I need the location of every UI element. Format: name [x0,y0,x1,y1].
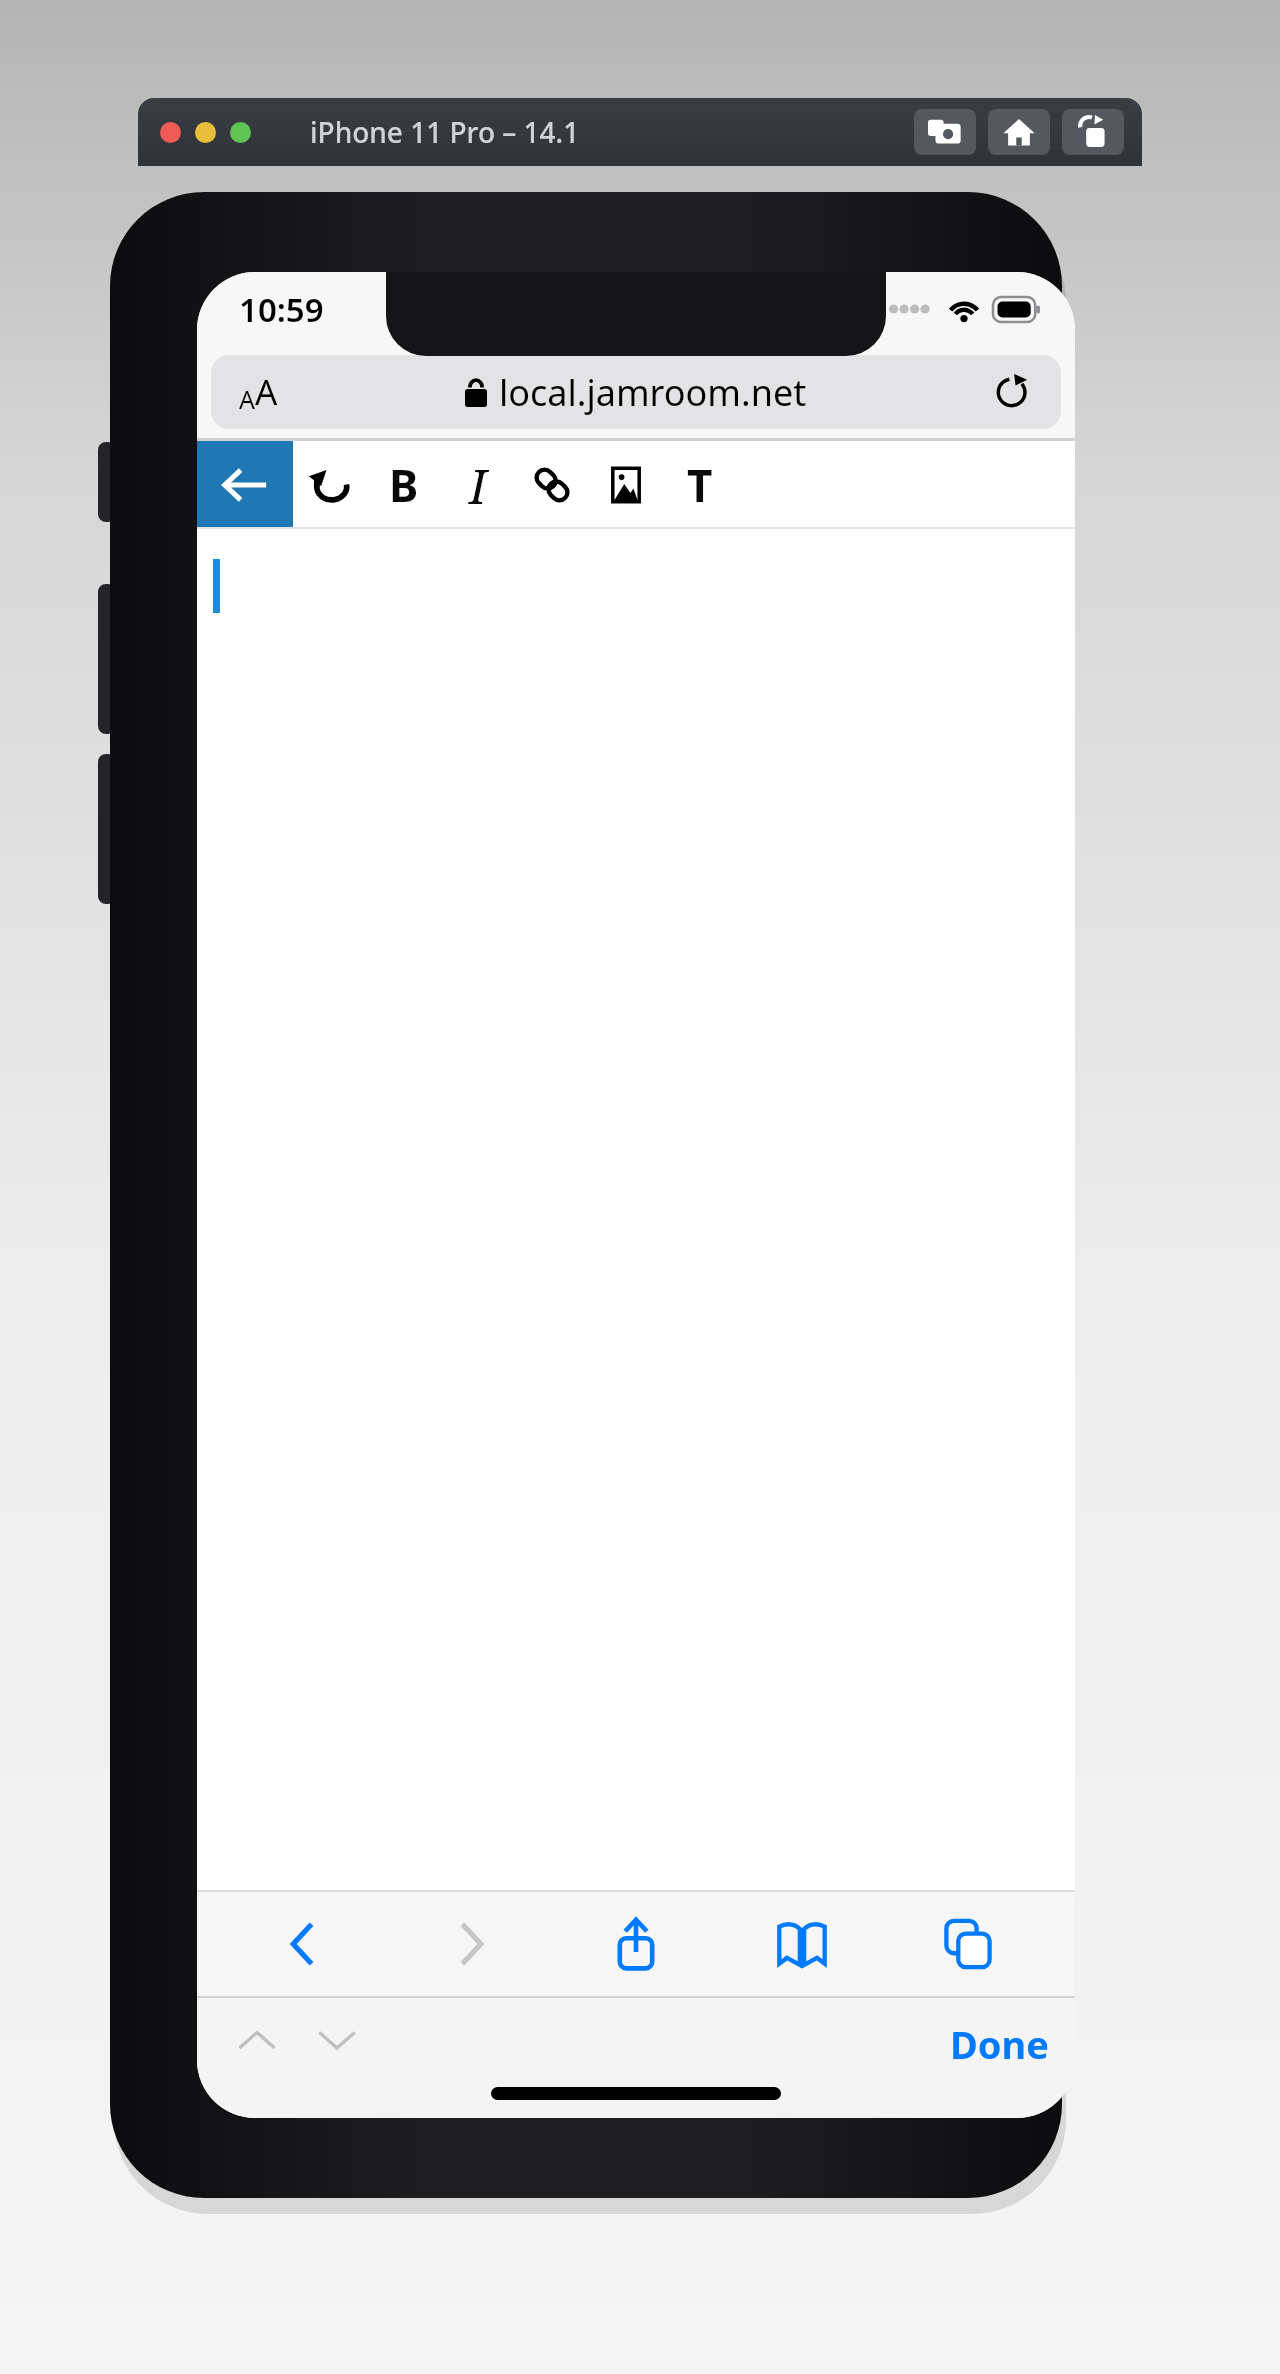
button[interactable]: Text size [239,368,278,416]
button[interactable]: Rotate [1062,109,1124,155]
staticText: iPhone 11 Pro – 14.1 [310,113,580,151]
button[interactable]: Back [221,1892,387,1996]
button[interactable]: Bold [367,441,441,529]
staticText: local.jamroom.net [499,368,807,417]
button[interactable]: Screenshot [914,109,976,155]
button[interactable]: Bookmarks [719,1892,885,1996]
button[interactable]: Share [553,1892,719,1996]
button[interactable]: Back [197,441,293,529]
button[interactable]: Previous field [225,2014,289,2066]
staticText: A [239,382,255,416]
button[interactable]: Done [950,2018,1049,2070]
button[interactable]: Insert image [589,441,663,529]
staticText: A [255,368,278,416]
button[interactable] [195,122,216,143]
staticText: 10:59 [239,287,324,332]
button[interactable]: Home [988,109,1050,155]
button[interactable]: Italic [441,441,515,529]
button[interactable]: Undo [293,441,367,529]
button[interactable] [197,529,1075,1890]
staticText: I [469,453,487,518]
button[interactable]: Text size [211,355,1061,429]
staticText: T [687,455,713,515]
staticText: Done [950,2018,1049,2070]
button[interactable]: Reload [989,369,1035,415]
button[interactable]: Tabs [885,1892,1051,1996]
button[interactable] [230,122,251,143]
button[interactable]: Text style [663,441,737,529]
staticText: B [389,455,419,515]
button[interactable]: Link [515,441,589,529]
button[interactable]: Forward [387,1892,553,1996]
button[interactable]: Next field [305,2014,369,2066]
button[interactable] [160,122,181,143]
